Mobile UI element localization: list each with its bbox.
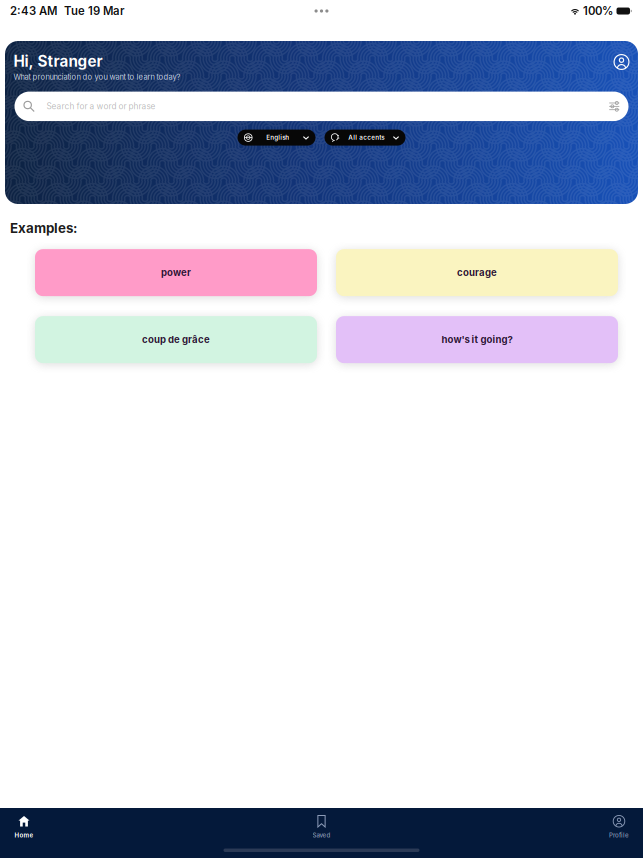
- staticText: Examples:: [10, 220, 77, 236]
- button[interactable]: power: [35, 249, 317, 296]
- staticText: All accents: [348, 134, 384, 141]
- button[interactable]: Saved: [298, 815, 344, 839]
- staticText: Home: [14, 831, 33, 839]
- staticText: Tue 19 Mar: [64, 4, 124, 18]
- staticText: Hi, Stranger: [13, 52, 102, 70]
- button[interactable]: Profile: [596, 815, 642, 839]
- staticText: What pronunciation do you want to learn …: [13, 72, 180, 82]
- button[interactable]: All accents: [324, 130, 405, 146]
- staticText: courage: [457, 267, 497, 278]
- staticText: how's it going?: [441, 334, 512, 345]
- button[interactable]: how's it going?: [336, 316, 618, 363]
- button[interactable]: coup de grâce: [35, 316, 317, 363]
- staticText: Saved: [312, 831, 330, 839]
- staticText: 2:43 AM: [10, 4, 57, 18]
- staticText: 100%: [583, 4, 613, 18]
- button[interactable]: Profile: [613, 54, 629, 70]
- staticText: English: [266, 134, 289, 141]
- button[interactable]: English: [237, 130, 315, 146]
- button[interactable]: Search for a word or phrase: [14, 92, 628, 121]
- staticText: Search for a word or phrase: [46, 101, 155, 111]
- staticText: Profile: [609, 831, 629, 839]
- button[interactable]: courage: [336, 249, 618, 296]
- staticText: power: [161, 267, 191, 278]
- staticText: coup de grâce: [142, 334, 210, 345]
- button[interactable]: Home: [1, 815, 47, 839]
